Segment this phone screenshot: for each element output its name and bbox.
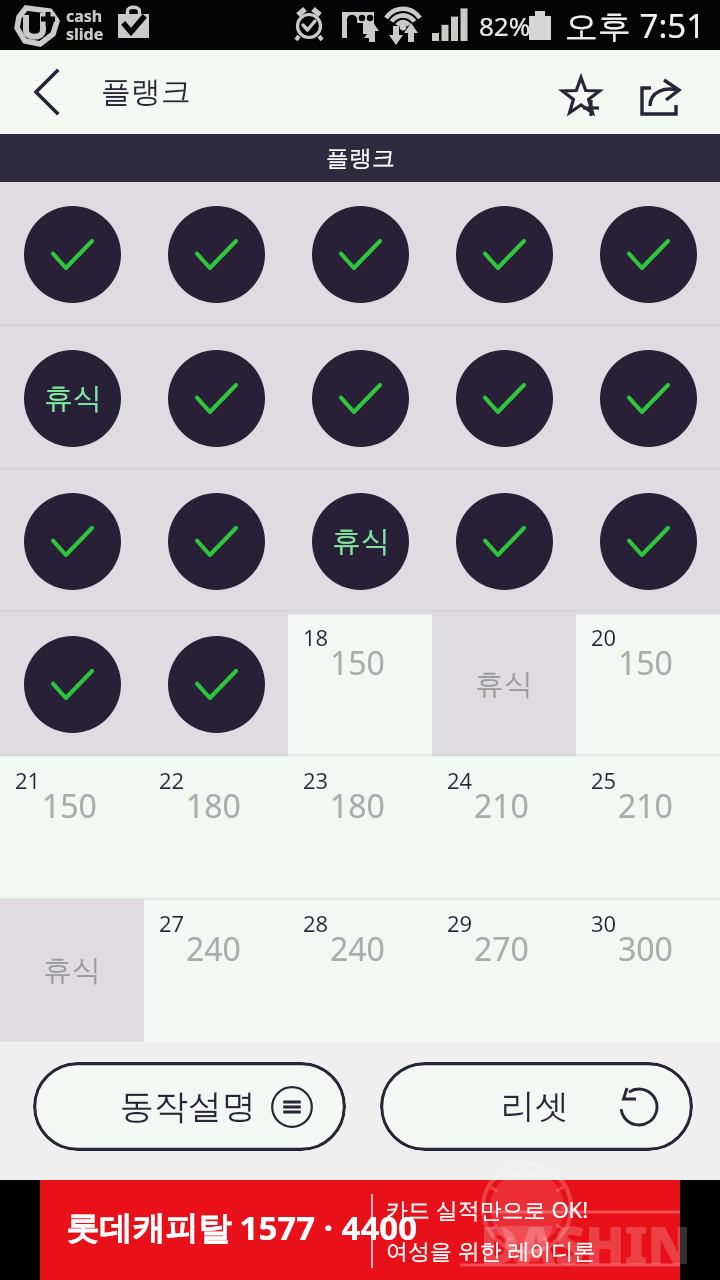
staticText: 240	[330, 927, 385, 971]
button[interactable]: 휴식	[288, 470, 432, 613]
staticText: 22	[159, 765, 185, 795]
staticText: 동작설명	[120, 1085, 256, 1128]
staticText: 180	[186, 784, 241, 828]
button[interactable]: 휴식	[0, 326, 144, 470]
button[interactable]: Add to favourites	[541, 52, 621, 132]
staticText: 24	[447, 765, 473, 795]
button[interactable]	[576, 182, 720, 326]
button[interactable]	[0, 182, 144, 326]
button[interactable]: 30	[576, 899, 720, 1042]
staticText: 29	[447, 908, 473, 938]
staticText: 210	[474, 784, 529, 828]
staticText: 150	[330, 641, 385, 685]
button[interactable]	[144, 182, 288, 326]
staticText: 롯데캐피탈 1577 · 4400	[66, 1205, 418, 1250]
staticText: DASHIN	[480, 1208, 691, 1279]
staticText: 휴식	[475, 666, 533, 703]
button[interactable]: 21	[0, 756, 144, 899]
staticText: 플랭크	[326, 144, 395, 173]
button[interactable]	[144, 613, 288, 756]
staticText: 23	[303, 765, 329, 795]
button[interactable]	[144, 470, 288, 613]
button[interactable]: Back	[0, 50, 88, 134]
staticText: 300	[618, 927, 673, 971]
staticText: 휴식	[44, 380, 102, 417]
staticText: 150	[618, 641, 673, 685]
button[interactable]	[288, 326, 432, 470]
button[interactable]: 휴식	[432, 613, 576, 756]
staticText: 28	[303, 908, 329, 938]
staticText: 150	[42, 784, 97, 828]
button[interactable]: 23	[288, 756, 432, 899]
staticText: 82%	[479, 8, 531, 43]
staticText: 오후 7:51	[565, 3, 706, 48]
staticText: 플랭크	[101, 73, 191, 111]
button[interactable]	[0, 613, 144, 756]
staticText: 카드 실적만으로 OK!	[386, 1194, 589, 1224]
button[interactable]: 동작설명	[33, 1062, 346, 1151]
button[interactable]	[432, 182, 576, 326]
staticText: 리셋	[501, 1085, 569, 1128]
button[interactable]: 28	[288, 899, 432, 1042]
staticText: 180	[330, 784, 385, 828]
button[interactable]: 18	[288, 613, 432, 756]
staticText: 240	[186, 927, 241, 971]
staticText: 휴식	[332, 523, 390, 560]
staticText: 휴식	[43, 952, 101, 989]
staticText: 여성을 위한 레이디론	[386, 1235, 596, 1265]
button[interactable]	[576, 326, 720, 470]
button[interactable]: 24	[432, 756, 576, 899]
staticText: 25	[591, 765, 617, 795]
staticText: 20	[591, 622, 617, 652]
staticText: 30	[591, 908, 617, 938]
button[interactable]: 29	[432, 899, 576, 1042]
button[interactable]	[144, 326, 288, 470]
button[interactable]: 22	[144, 756, 288, 899]
button[interactable]: 27	[144, 899, 288, 1042]
staticText: 18	[303, 622, 329, 652]
button[interactable]: 휴식	[0, 899, 144, 1042]
staticText: 27	[159, 908, 185, 938]
button[interactable]: 25	[576, 756, 720, 899]
staticText: 210	[618, 784, 673, 828]
button[interactable]: 리셋	[380, 1062, 693, 1151]
button[interactable]	[432, 470, 576, 613]
staticText: 21	[15, 765, 41, 795]
button[interactable]	[288, 182, 432, 326]
staticText: cash slide	[66, 5, 104, 45]
button[interactable]	[0, 470, 144, 613]
button[interactable]	[576, 470, 720, 613]
button[interactable]: Advertisement	[0, 1180, 720, 1280]
button[interactable]: Share	[622, 52, 702, 132]
staticText: 270	[474, 927, 529, 971]
button[interactable]	[432, 326, 576, 470]
button[interactable]: 20	[576, 613, 720, 756]
